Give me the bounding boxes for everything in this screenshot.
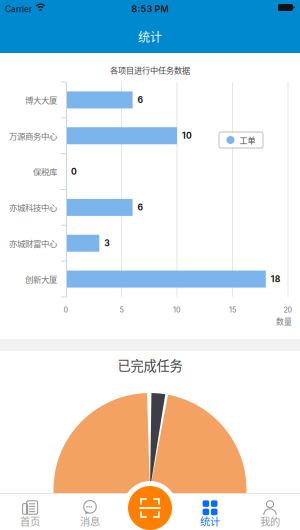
button[interactable]: 消息 (60, 493, 120, 530)
staticText: 我的 (260, 514, 280, 528)
staticText: 5 (119, 306, 123, 314)
staticText: 统计 (200, 514, 220, 528)
staticText: 工单 (239, 134, 255, 146)
button[interactable]: 扫一扫 (123, 481, 177, 530)
staticText: 亦城财富中心 (9, 237, 57, 249)
staticText: 3 (104, 238, 110, 248)
button[interactable]: 首页 (0, 493, 60, 530)
staticText: 创新大厦 (25, 273, 57, 285)
staticText: 数量 (276, 315, 292, 327)
staticText: 20 (283, 306, 292, 314)
staticText: 各项目进行中任务数据 (110, 64, 190, 76)
staticText: 15 (229, 306, 236, 314)
staticText: 0 (71, 166, 77, 177)
staticText: 首页 (20, 514, 40, 528)
staticText: 已完成任务 (117, 355, 182, 374)
staticText: 保税库 (33, 165, 57, 178)
staticText: 统计 (138, 28, 162, 45)
button[interactable]: 统计 (180, 493, 240, 530)
staticText: Carrier (5, 4, 32, 14)
staticText: 博大大厦 (25, 94, 57, 106)
staticText: 10 (173, 306, 181, 314)
staticText: 18 (271, 274, 281, 284)
staticText: 10 (182, 131, 192, 141)
button[interactable]: 我的 (240, 493, 300, 530)
staticText: 8:53 PM (131, 4, 168, 14)
staticText: 消息 (80, 514, 100, 528)
staticText: 亦城科技中心 (9, 201, 57, 213)
staticText: 0 (63, 306, 68, 314)
staticText: 6 (138, 202, 144, 213)
staticText: 6 (138, 95, 144, 105)
staticText: 万源商务中心 (9, 130, 57, 142)
